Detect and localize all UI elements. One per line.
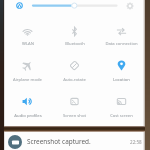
staticText: WLAN (22, 41, 34, 47)
button[interactable]: Audio profiles (4, 90, 51, 118)
button[interactable]: Bluetooth (51, 20, 98, 46)
staticText: Bluetooth (65, 41, 85, 47)
staticText: Screen shot (63, 113, 86, 119)
staticText: Data connection (105, 41, 138, 47)
button[interactable]: WLAN (4, 20, 51, 46)
button[interactable]: Cast screen (98, 90, 145, 118)
staticText: Location (113, 77, 130, 83)
button[interactable]: Screenshot captured. (4, 133, 145, 150)
button[interactable]: Auto-rotate (51, 54, 98, 82)
button[interactable]: Auto brightness (13, 0, 26, 12)
button[interactable]: Settings (123, 0, 136, 12)
staticText: Airplane mode (13, 77, 42, 83)
button[interactable]: Screen shot (51, 90, 98, 118)
button[interactable]: Airplane mode (4, 54, 51, 82)
staticText: Cast screen (110, 113, 133, 119)
staticText: Auto-rotate (63, 77, 86, 83)
button[interactable]: Data connection (98, 20, 145, 46)
staticText: Audio profiles (14, 113, 42, 119)
staticText: 22:58 (130, 139, 142, 145)
staticText: Screenshot captured. (27, 137, 91, 146)
button[interactable]: Location (98, 54, 145, 82)
